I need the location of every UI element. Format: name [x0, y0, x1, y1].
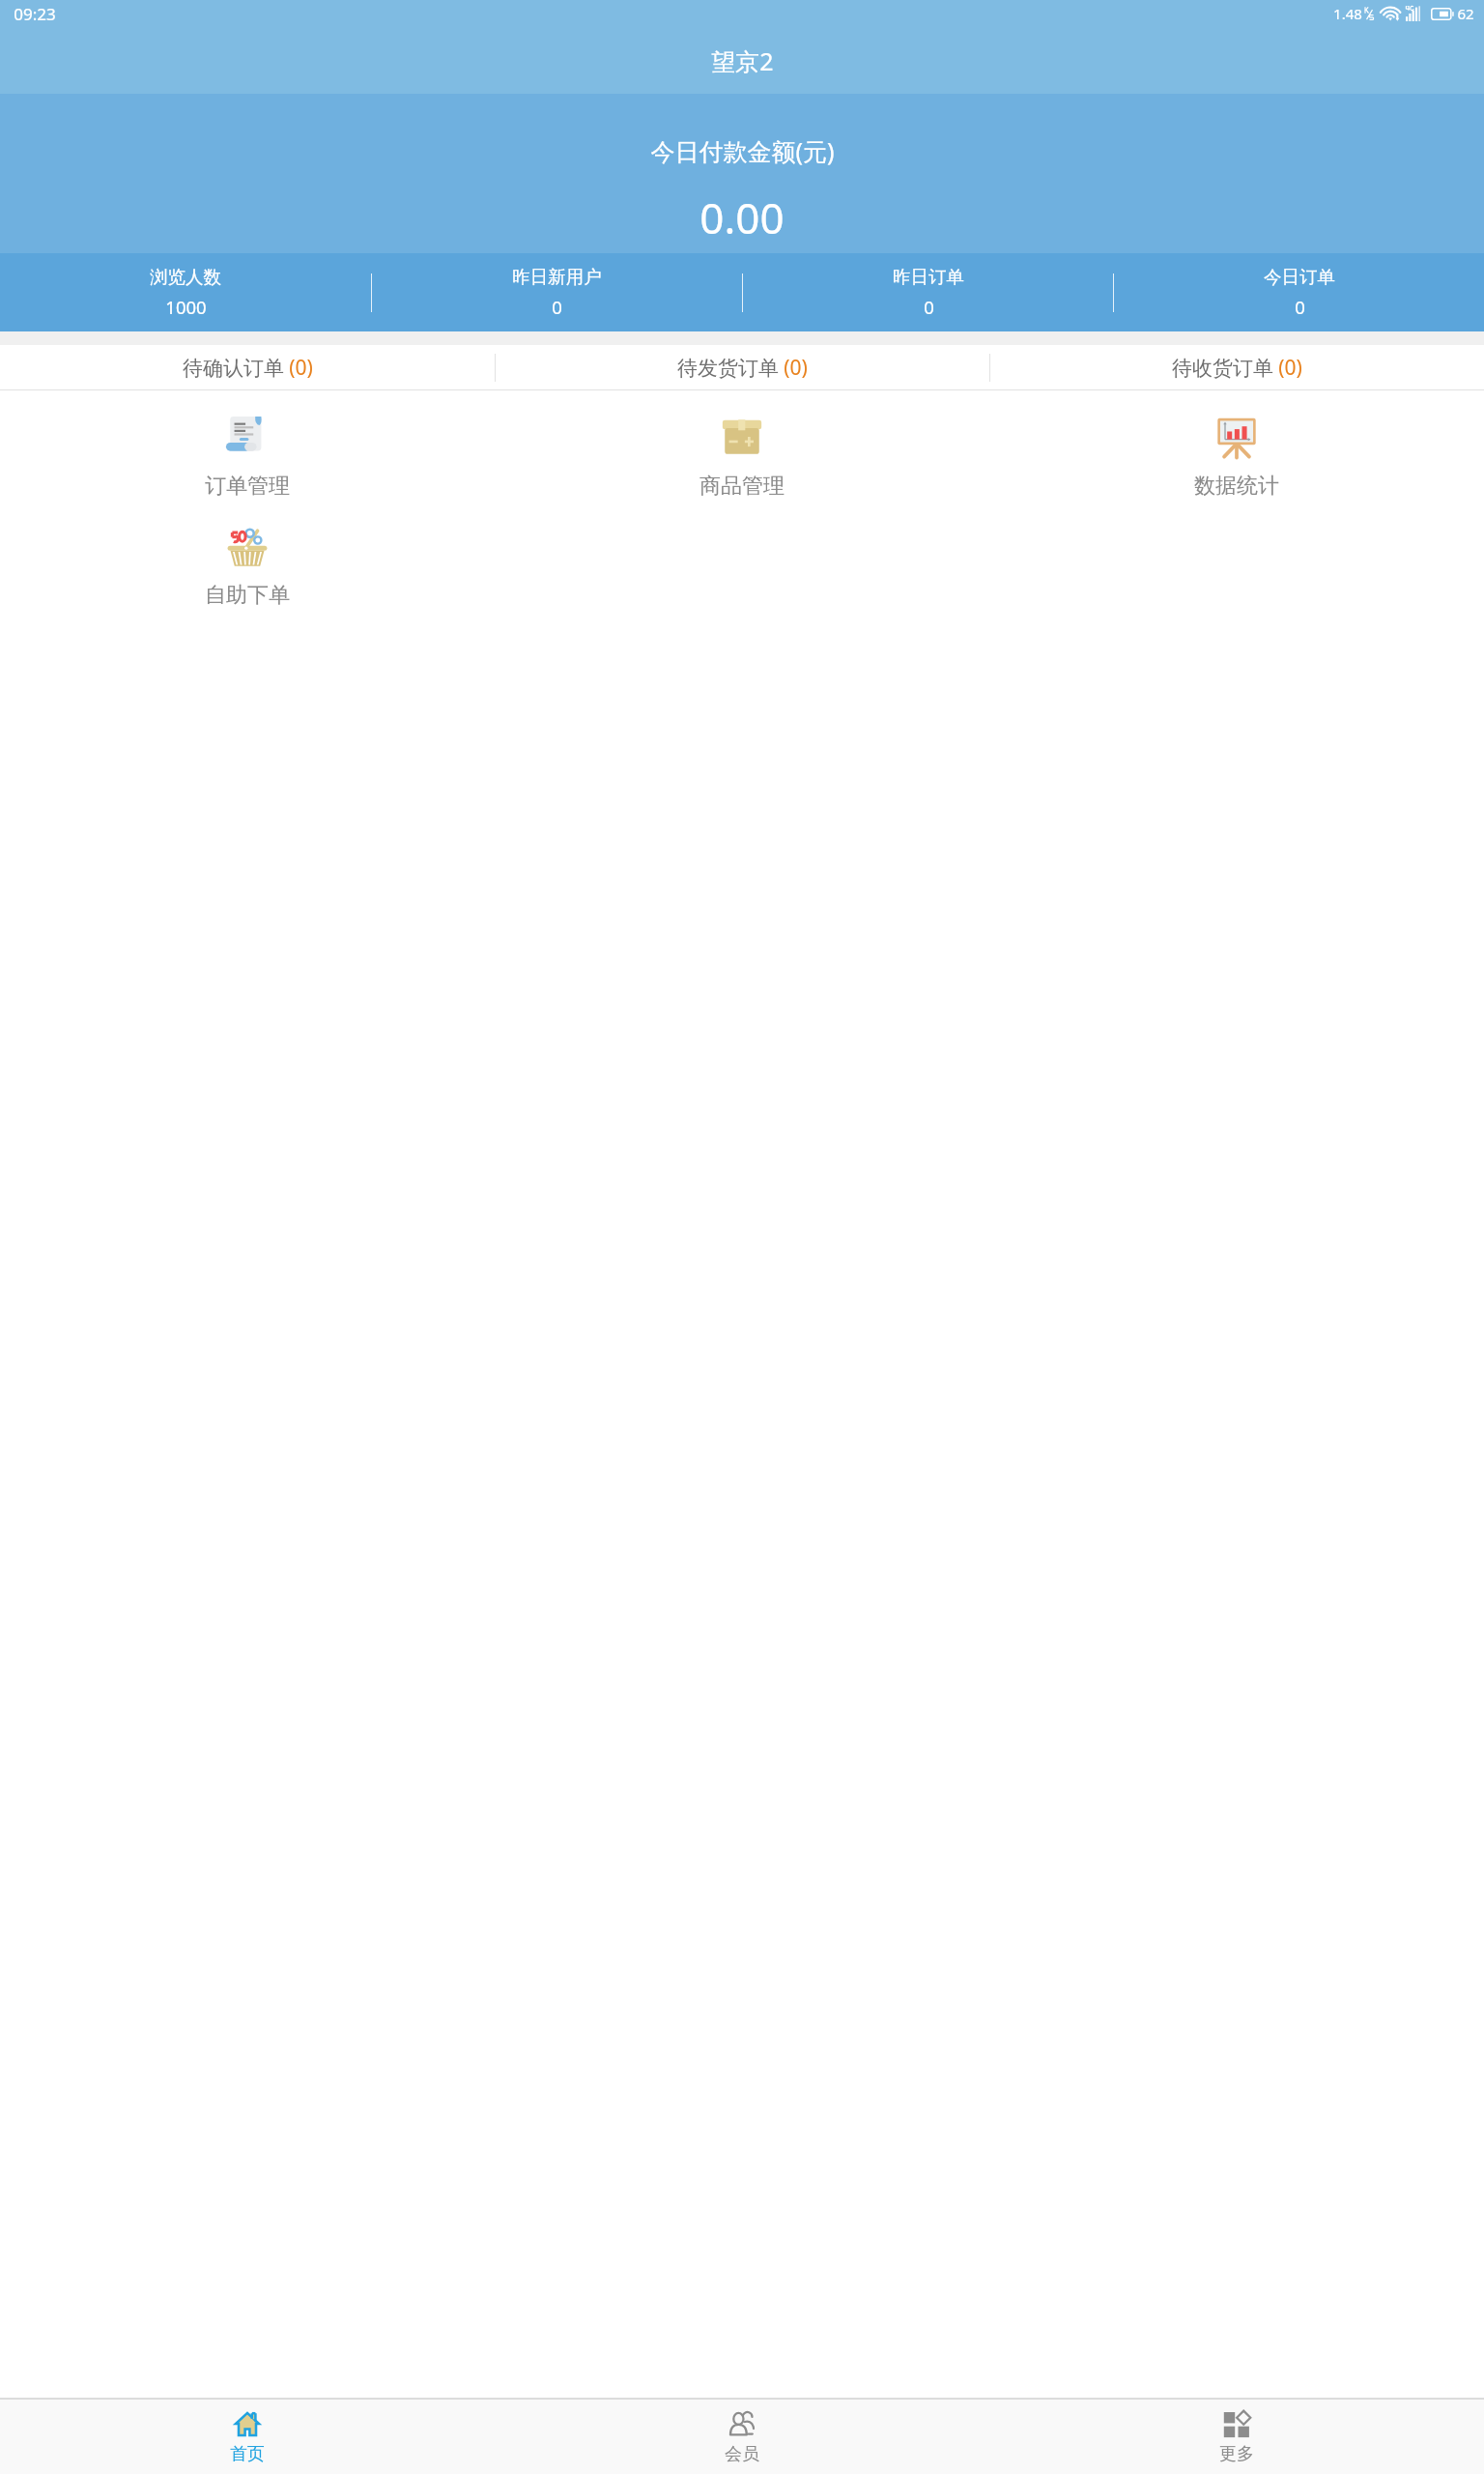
staticText: 待发货订单: [677, 356, 779, 381]
staticText: 浏览人数: [150, 266, 221, 288]
staticText: (0): [289, 354, 313, 382]
staticText: 0: [1295, 295, 1305, 319]
staticText: 昨日新用户: [512, 266, 602, 288]
staticText: 望京2: [711, 44, 774, 77]
staticText: 1.48: [1333, 4, 1362, 23]
button[interactable]: 更多: [989, 2400, 1484, 2474]
button[interactable]: 首页: [0, 2400, 495, 2474]
staticText: 订单管理: [205, 473, 290, 500]
button[interactable]: 待发货订单: [496, 345, 989, 389]
staticText: 62: [1457, 4, 1474, 23]
staticText: 0: [924, 295, 934, 319]
staticText: 0.00: [699, 188, 785, 246]
button[interactable]: 昨日订单: [743, 253, 1113, 331]
button[interactable]: 今日订单: [1114, 253, 1484, 331]
staticText: 09:23: [14, 3, 56, 25]
button[interactable]: 自助下单: [0, 511, 495, 620]
button[interactable]: 待确认订单: [0, 345, 495, 389]
staticText: (0): [1278, 354, 1302, 382]
staticText: 数据统计: [1194, 473, 1279, 500]
staticText: 自助下单: [205, 582, 290, 609]
button[interactable]: 数据统计: [989, 402, 1484, 511]
button[interactable]: 订单管理: [0, 402, 495, 511]
button[interactable]: 浏览人数: [0, 253, 371, 331]
staticText: (0): [784, 354, 808, 382]
staticText: 0: [552, 295, 562, 319]
button[interactable]: 会员: [495, 2400, 989, 2474]
staticText: 今日订单: [1264, 266, 1335, 288]
staticText: 更多: [1219, 2443, 1254, 2465]
button[interactable]: 昨日新用户: [372, 253, 742, 331]
staticText: 首页: [230, 2443, 265, 2465]
staticText: 1000: [165, 295, 207, 319]
staticText: 待确认订单: [183, 356, 284, 381]
staticText: 待收货订单: [1172, 356, 1273, 381]
staticText: 会员: [725, 2443, 759, 2465]
staticText: 今日付款金额(元): [650, 134, 835, 167]
staticText: 昨日订单: [893, 266, 964, 288]
button[interactable]: 待收货订单: [990, 345, 1484, 389]
button[interactable]: 商品管理: [495, 402, 989, 511]
staticText: 商品管理: [699, 473, 785, 500]
